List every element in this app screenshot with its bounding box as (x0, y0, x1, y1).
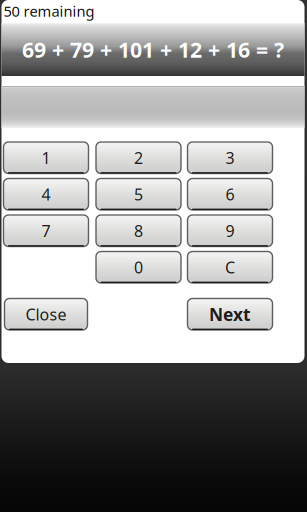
button[interactable]: 8 (96, 215, 181, 246)
staticText: 7 (41, 220, 50, 241)
button[interactable]: 1 (3, 142, 88, 173)
button[interactable]: Close (4, 298, 87, 330)
button[interactable]: Next (187, 298, 272, 330)
button[interactable]: 3 (187, 142, 272, 173)
staticText: 0 (134, 257, 143, 278)
button[interactable]: 4 (3, 178, 88, 210)
staticText: 3 (225, 147, 234, 168)
button[interactable]: 6 (187, 178, 272, 210)
staticText: 2 (134, 147, 143, 168)
staticText: 8 (134, 220, 143, 241)
staticText: 69 + 79 + 101 + 12 + 16 = ? (22, 35, 284, 64)
staticText: 6 (225, 184, 234, 205)
staticText: C (225, 257, 235, 278)
button[interactable]: 2 (96, 142, 181, 173)
button[interactable]: 9 (187, 215, 272, 246)
staticText: 5 (134, 184, 143, 205)
staticText: 9 (225, 220, 234, 241)
button[interactable]: 5 (96, 178, 181, 210)
staticText: 1 (41, 147, 50, 168)
staticText: Next (209, 303, 251, 326)
staticText: Close (25, 304, 66, 325)
staticText: 50 remaining (3, 1, 94, 21)
button[interactable]: C (187, 251, 272, 283)
button[interactable]: 7 (3, 215, 88, 246)
staticText: 4 (41, 184, 50, 205)
button[interactable]: 0 (96, 251, 181, 283)
